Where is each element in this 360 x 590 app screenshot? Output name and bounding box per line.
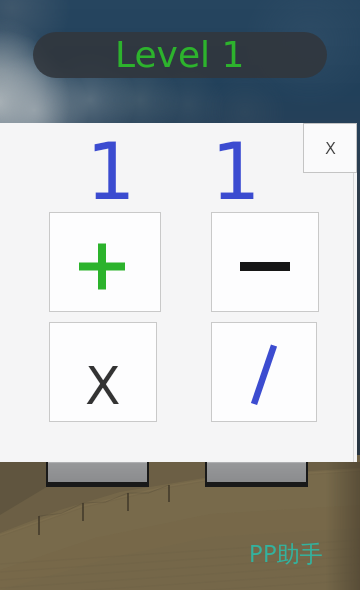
- button[interactable]: [211, 212, 319, 312]
- staticText: 1: [211, 127, 261, 218]
- staticText: X: [85, 356, 121, 417]
- button[interactable]: X: [303, 123, 357, 173]
- button[interactable]: [49, 212, 161, 312]
- button[interactable]: Level 1: [33, 32, 327, 78]
- staticText: 1: [86, 127, 136, 218]
- staticText: X: [325, 139, 336, 158]
- button[interactable]: [211, 322, 317, 422]
- button[interactable]: [49, 322, 157, 422]
- staticText: Level 1: [115, 34, 245, 76]
- staticText: PP助手: [249, 537, 323, 568]
